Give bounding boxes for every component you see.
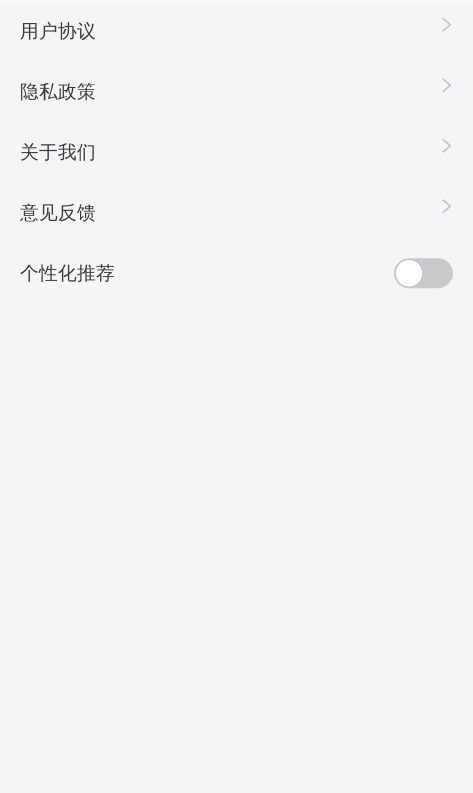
staticText: 意见反馈 — [20, 201, 96, 224]
staticText: 关于我们 — [20, 141, 96, 164]
button[interactable]: 隐私政策 — [0, 61, 473, 122]
staticText: 个性化推荐 — [20, 262, 115, 285]
staticText: 隐私政策 — [20, 80, 96, 103]
button[interactable]: 关于我们 — [0, 122, 473, 182]
staticText: 用户协议 — [20, 20, 96, 43]
button[interactable]: 个性化推荐 — [394, 258, 453, 288]
button[interactable]: 意见反馈 — [0, 182, 473, 243]
button[interactable]: 用户协议 — [0, 1, 473, 61]
